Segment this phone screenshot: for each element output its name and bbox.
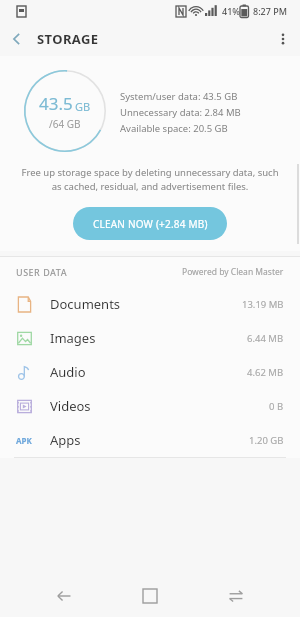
staticText: System/user data: 43.5 GB — [120, 90, 238, 103]
staticText: Videos — [50, 397, 91, 415]
staticText: 1.20 GB — [249, 434, 284, 447]
staticText: GB — [75, 99, 91, 114]
button[interactable]: APK — [0, 423, 300, 457]
staticText: 13.19 MB — [242, 298, 284, 311]
staticText: USER DATA — [16, 266, 68, 278]
staticText: Images — [50, 329, 96, 347]
staticText: Documents — [50, 295, 121, 313]
staticText: Powered by Clean Master — [182, 266, 284, 278]
button[interactable]: Back — [42, 575, 86, 617]
button[interactable]: More options — [266, 22, 300, 56]
staticText: 8:27 PM — [253, 5, 287, 17]
staticText: 43.5 — [39, 92, 73, 115]
staticText: Apps — [50, 431, 81, 449]
staticText: APK — [16, 435, 32, 446]
staticText: Free up storage space by deleting unnece… — [18, 166, 282, 193]
staticText: CLEAN NOW (+2.84 MB) — [93, 217, 208, 231]
button[interactable]: Back — [0, 22, 34, 56]
staticText: /64 GB — [49, 117, 81, 131]
staticText: Unnecessary data: 2.84 MB — [120, 106, 241, 119]
button[interactable]: Audio — [0, 355, 300, 389]
button[interactable]: Videos — [0, 389, 300, 423]
staticText: 41% — [222, 5, 240, 17]
button[interactable]: Recents — [214, 575, 258, 617]
staticText: Available space: 20.5 GB — [120, 122, 228, 135]
button[interactable]: Images — [0, 321, 300, 355]
staticText: 6.44 MB — [247, 332, 284, 345]
button[interactable]: CLEAN NOW (+2.84 MB) — [73, 207, 227, 240]
staticText: Audio — [50, 363, 86, 381]
staticText: STORAGE — [37, 30, 99, 48]
staticText: 4.62 MB — [247, 366, 284, 379]
button[interactable]: Documents — [0, 287, 300, 321]
staticText: 0 B — [269, 400, 284, 413]
button[interactable]: Home — [128, 575, 172, 617]
